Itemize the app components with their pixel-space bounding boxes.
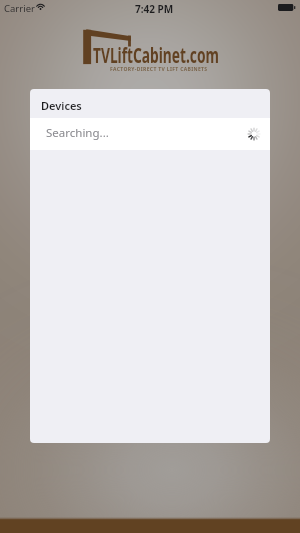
- other: Battery full: [278, 4, 295, 11]
- button[interactable]: Searching...: [30, 118, 270, 150]
- staticText: 7:42 PM: [135, 2, 174, 16]
- other: TV Lift Cabinet logo: [83, 29, 131, 65]
- staticText: Devices: [41, 98, 82, 113]
- staticText: Searching...: [46, 125, 109, 141]
- staticText: Carrier: [4, 2, 35, 15]
- other: Wi-Fi signal: [36, 3, 45, 10]
- staticText: FACTORY-DIRECT TV LIFT CABINETS: [110, 66, 208, 73]
- staticText: TVLiftCabinet.com: [93, 41, 219, 70]
